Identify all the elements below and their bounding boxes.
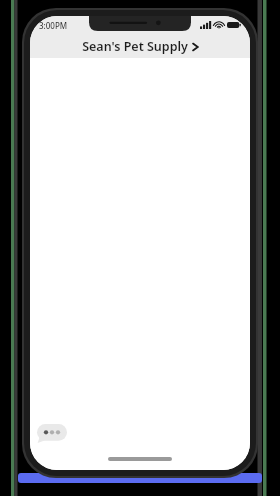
button[interactable]: Sean's Pet Supply bbox=[30, 34, 250, 58]
button[interactable]: Typing indicator bbox=[37, 424, 67, 443]
staticText: 3:00PM bbox=[39, 20, 68, 31]
staticText: Sean's Pet Supply bbox=[82, 38, 188, 55]
